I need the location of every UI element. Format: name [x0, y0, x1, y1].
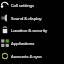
- button[interactable]: Location and security: [0, 23, 64, 36]
- staticText: Call settings: [11, 2, 34, 8]
- other: Accounts and sync: [1, 52, 9, 60]
- other: Applications: [1, 39, 9, 47]
- staticText: Accounts & sync: [11, 53, 42, 59]
- staticText: Sound & display: [11, 15, 42, 21]
- button[interactable]: Applications: [0, 36, 64, 49]
- staticText: Applications: [11, 40, 35, 46]
- button[interactable]: Sound and display: [0, 11, 64, 24]
- other: Call settings: [1, 1, 9, 9]
- staticText: Location & security: [11, 27, 48, 33]
- other: Location and security: [1, 26, 9, 34]
- button[interactable]: Accounts and sync: [0, 49, 64, 62]
- button[interactable]: Call settings: [0, 0, 64, 11]
- other: Sound and display: [1, 14, 9, 22]
